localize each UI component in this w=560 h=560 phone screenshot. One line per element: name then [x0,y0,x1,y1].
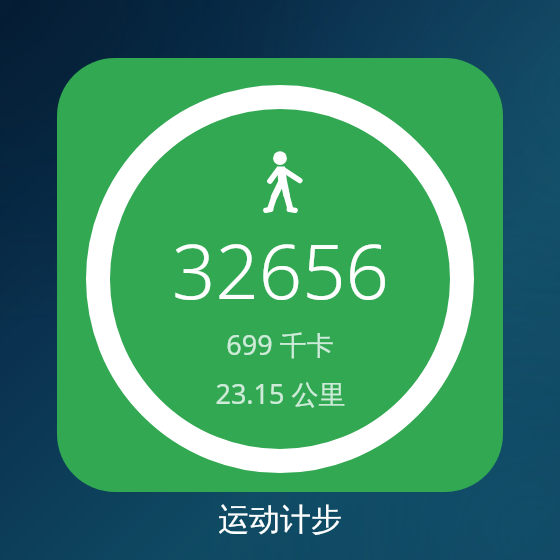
staticText: 运动计步 [218,500,342,539]
other: Walking steps [257,152,303,214]
button[interactable]: Walking steps [57,58,503,492]
staticText: 32656 [172,218,389,322]
staticText: 699 千卡 [226,326,334,363]
staticText: 23.15 公里 [215,375,346,412]
